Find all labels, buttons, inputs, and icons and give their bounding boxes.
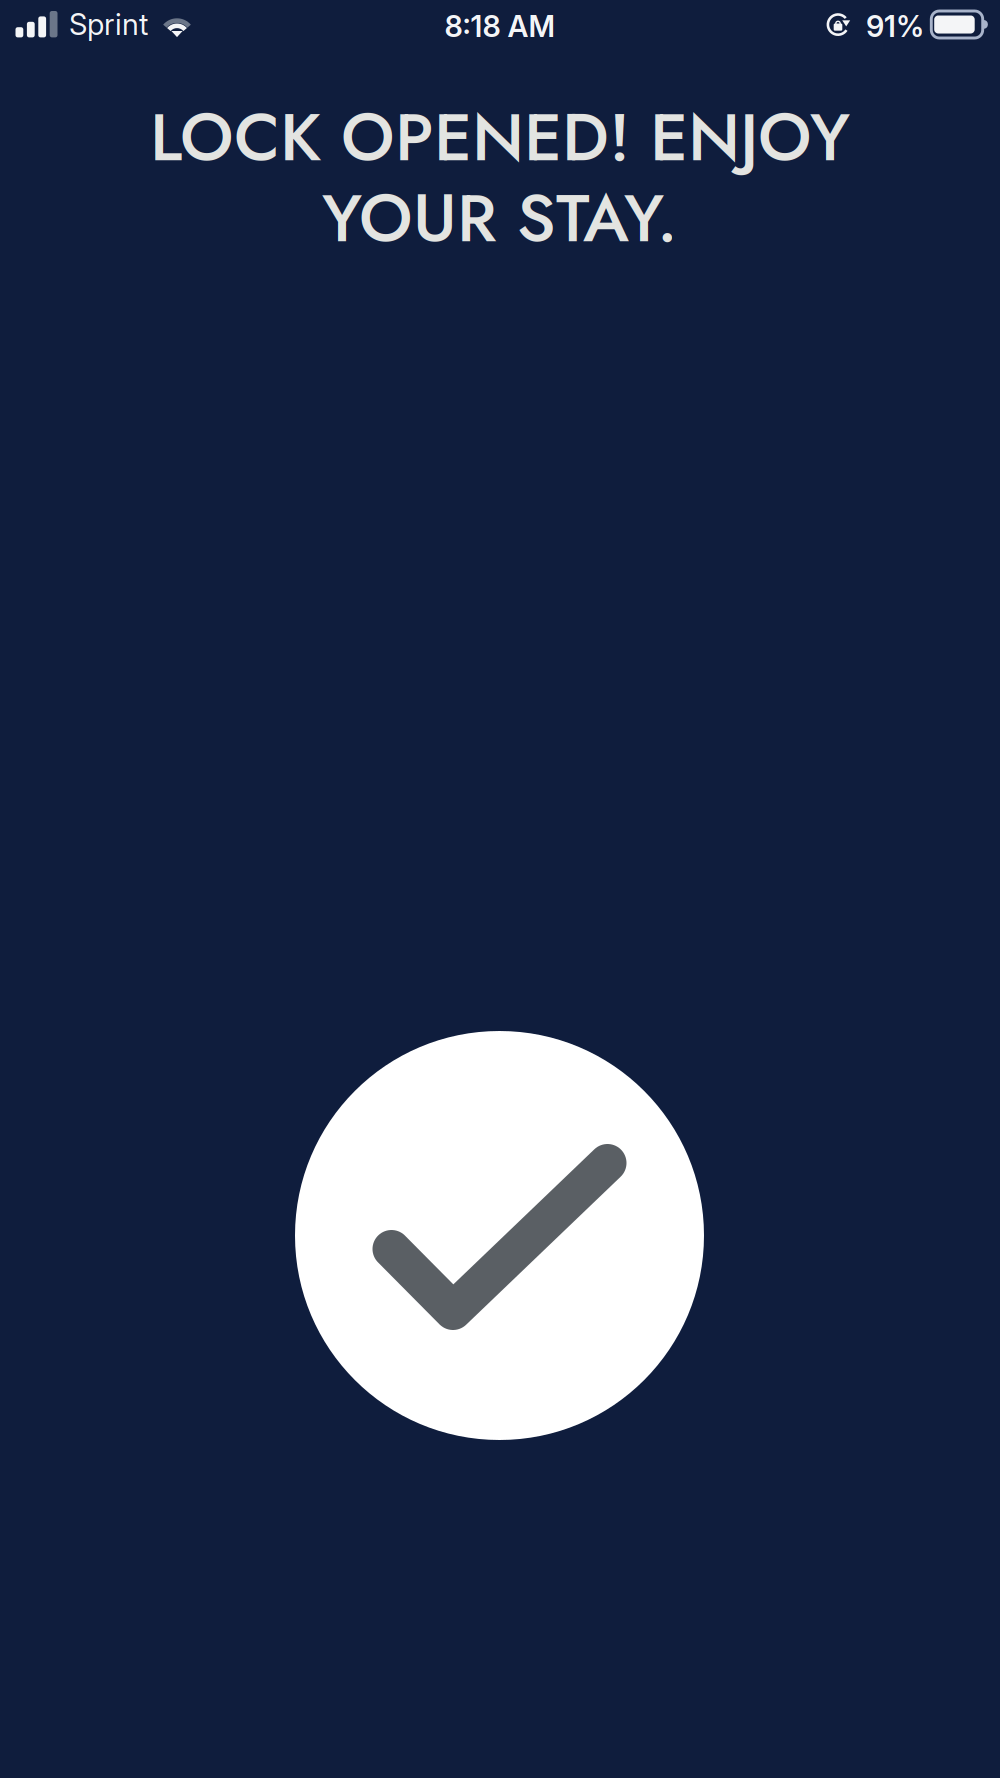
staticText: Sprint: [69, 6, 148, 42]
staticText: 91%: [866, 8, 924, 44]
staticText: 8:18 AM: [444, 8, 555, 44]
staticText: LOCK OPENED! ENJOY: [150, 89, 850, 185]
staticText: YOUR STAY.: [322, 170, 678, 266]
button[interactable]: Lock opened — continue: [295, 1031, 704, 1440]
